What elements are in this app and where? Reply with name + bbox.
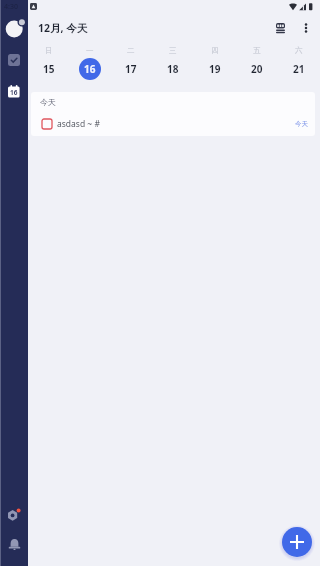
staticText: 15 (43, 62, 55, 76)
staticText: 三 (169, 46, 177, 55)
button[interactable]: Tasks (8, 54, 20, 66)
button[interactable]: 15 (38, 58, 60, 80)
staticText: 一 (86, 46, 94, 55)
staticText: 16 (84, 62, 96, 76)
staticText: 五 (253, 46, 261, 55)
button[interactable]: 17 (120, 58, 142, 80)
staticText: asdasd ~ # (57, 118, 100, 130)
staticText: 今天 (295, 120, 308, 128)
staticText: 六 (295, 46, 303, 55)
staticText: 18 (167, 62, 179, 76)
staticText: 日 (45, 46, 53, 55)
button[interactable]: 18 (162, 58, 184, 80)
staticText: 4:30 (4, 2, 18, 12)
button[interactable]: Add task (282, 527, 312, 557)
button[interactable]: asdasd ~ # (31, 111, 315, 136)
staticText: 17 (125, 62, 137, 76)
staticText: 20 (251, 62, 263, 76)
staticText: 今天 (40, 97, 56, 107)
button[interactable]: 21 (288, 58, 310, 80)
staticText: 16 (10, 88, 18, 97)
staticText: 12月, 今天 (38, 21, 88, 35)
button[interactable]: Switch view (267, 15, 293, 41)
button[interactable]: 20 (246, 58, 268, 80)
button[interactable]: Profile (6, 17, 27, 37)
staticText: 21 (293, 62, 305, 76)
button[interactable]: 19 (204, 58, 226, 80)
staticText: 二 (127, 46, 135, 55)
button[interactable]: 16 (79, 58, 101, 80)
staticText: 19 (209, 62, 221, 76)
button[interactable]: Settings (7, 508, 21, 522)
button[interactable]: Notifications (8, 538, 21, 550)
button[interactable]: Calendar (8, 85, 20, 98)
staticText: 四 (211, 46, 219, 55)
button[interactable]: More options (293, 15, 319, 41)
